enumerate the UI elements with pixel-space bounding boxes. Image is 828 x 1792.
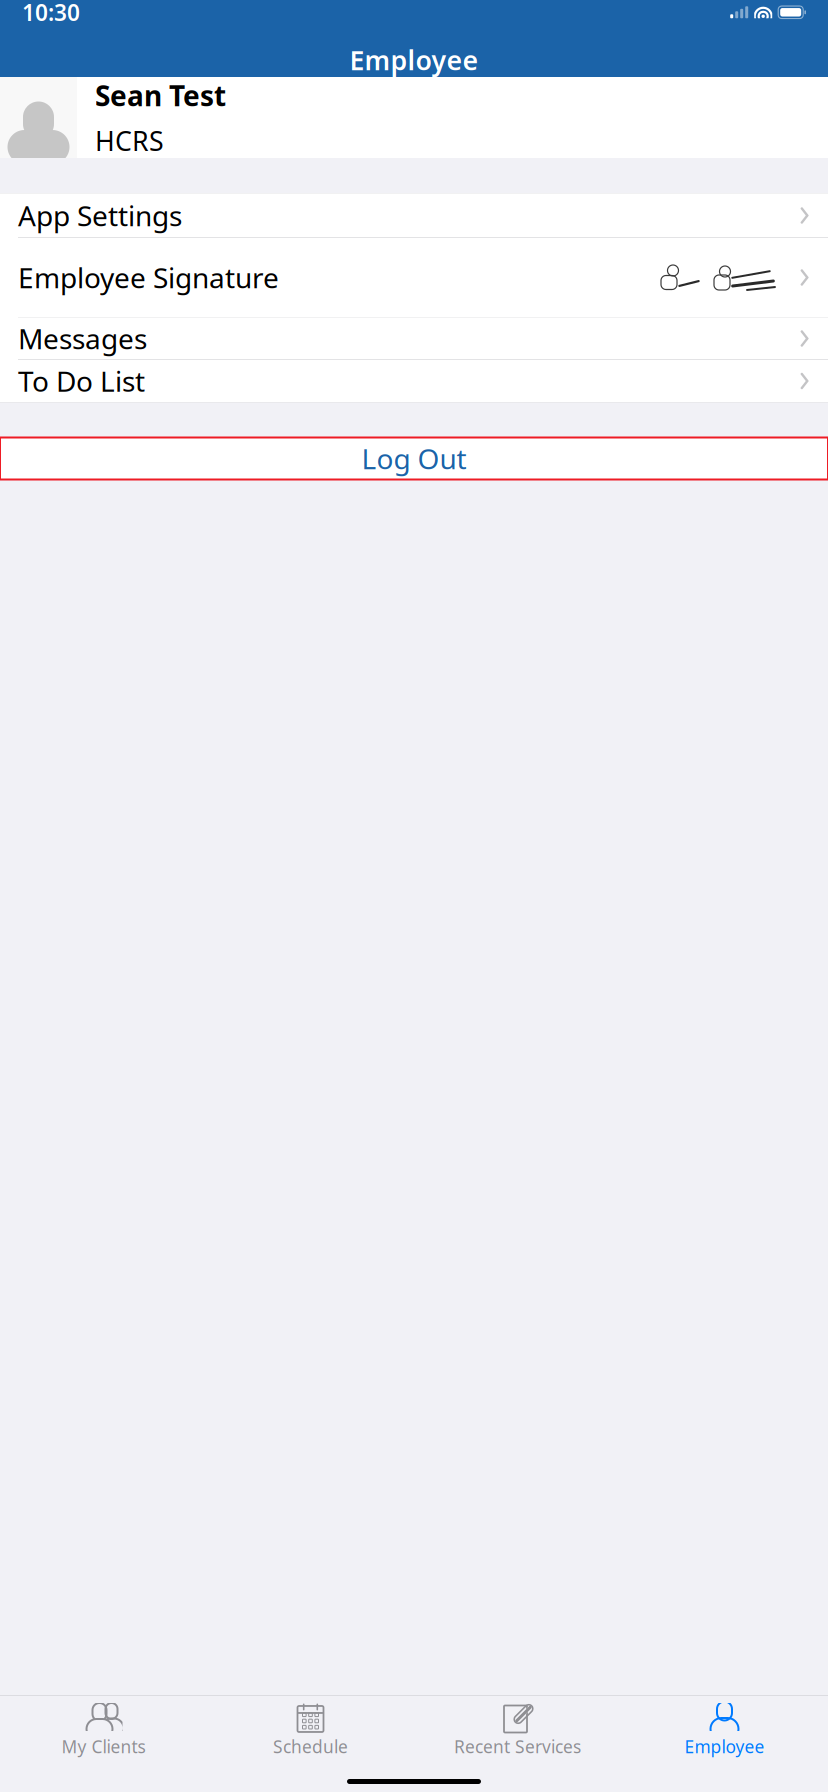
button[interactable]: To Do List [0,360,828,402]
staticText: HCRS [95,123,164,158]
staticText: Recent Services [454,1735,581,1758]
staticText: Schedule [273,1735,348,1758]
staticText: To Do List [18,362,145,400]
staticText: Employee [684,1735,764,1758]
staticText: Employee Signature [18,259,279,296]
staticText: App Settings [18,197,182,234]
button[interactable]: Employee Signature [0,238,828,317]
button[interactable]: Employee [621,1703,828,1757]
button[interactable]: Schedule [207,1703,414,1757]
staticText: My Clients [61,1735,145,1758]
staticText: Log Out [361,440,466,477]
button[interactable]: Log Out [0,437,828,479]
staticText: Employee [349,42,478,78]
button[interactable]: Recent Services [414,1703,621,1757]
staticText: Messages [18,320,147,357]
button[interactable]: Messages [0,317,828,359]
button[interactable]: App Settings [0,193,828,237]
button[interactable]: My Clients [0,1703,207,1757]
staticText: 10:30 [22,0,80,27]
staticText: Sean Test [95,77,226,114]
